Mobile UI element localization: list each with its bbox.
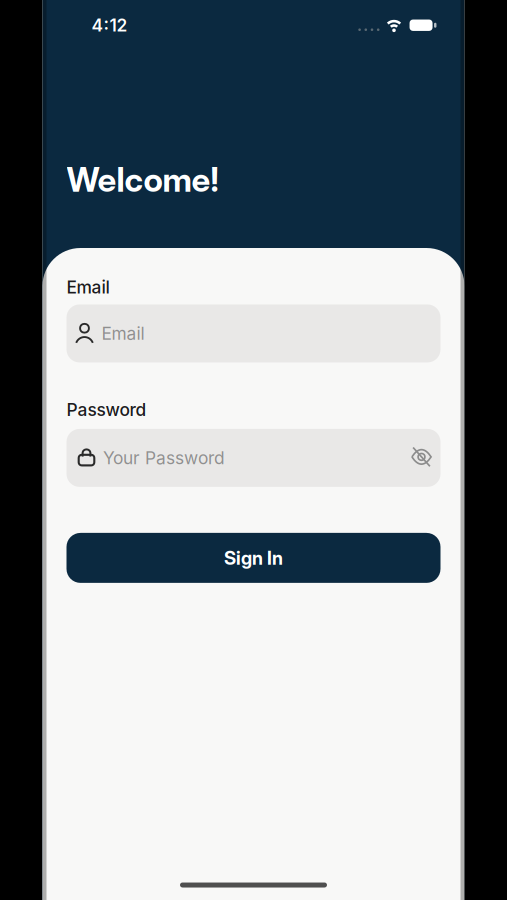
button[interactable]: Password	[66, 429, 440, 487]
button[interactable]: Sign In	[66, 533, 440, 583]
button[interactable]: Email	[66, 304, 440, 362]
staticText: Email	[66, 277, 109, 297]
staticText: Password	[66, 399, 146, 420]
staticText: 4:12	[91, 15, 127, 35]
staticText: Email	[101, 323, 144, 344]
staticText: Sign In	[224, 547, 283, 569]
staticText: Welcome!	[66, 159, 218, 200]
staticText: Your Password	[103, 448, 225, 468]
button[interactable]: Show password	[410, 446, 432, 468]
